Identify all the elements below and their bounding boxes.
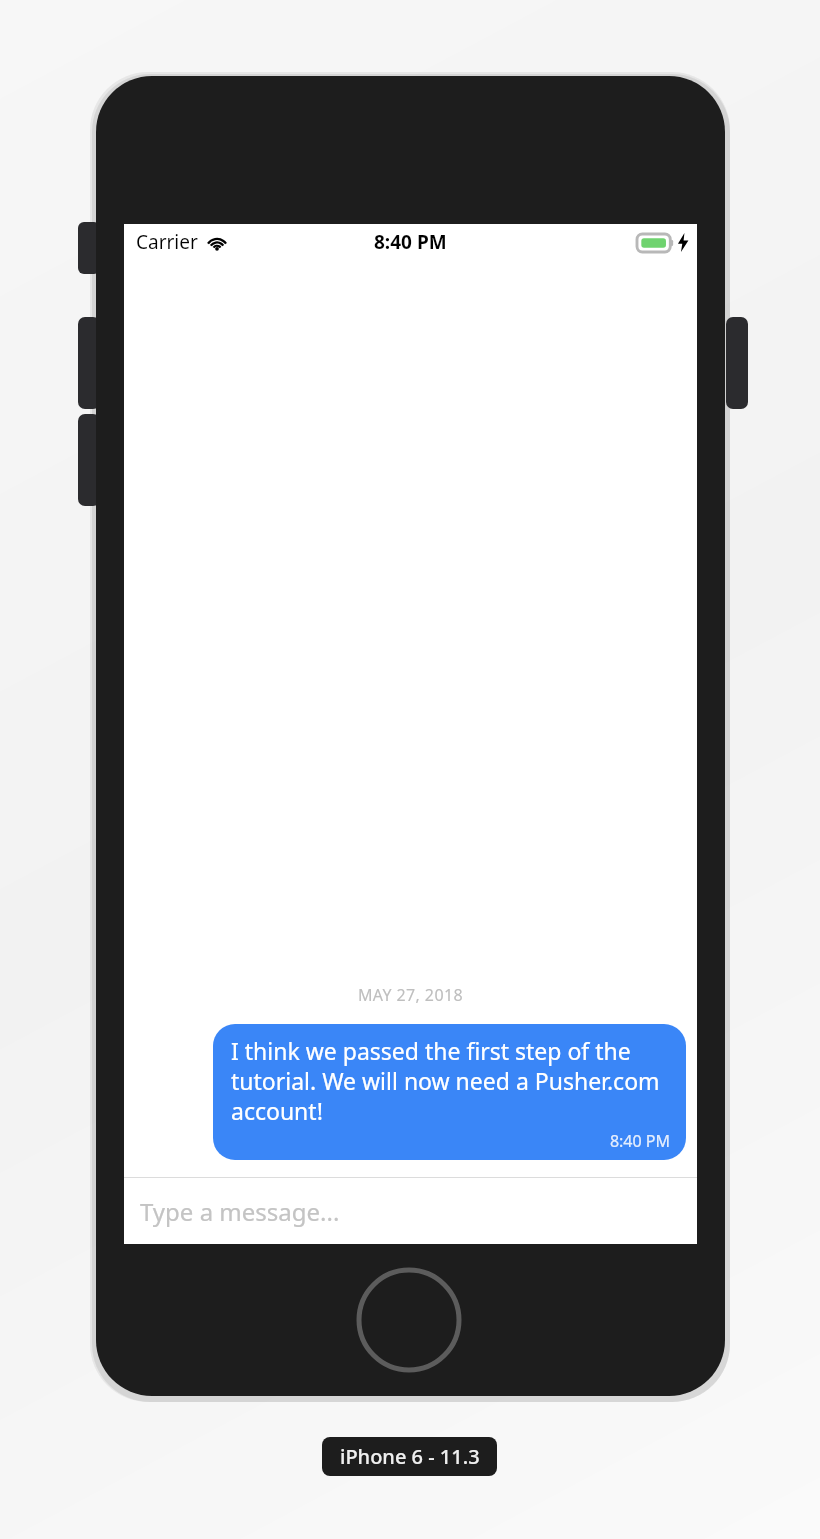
button[interactable]: Type a message... xyxy=(124,1178,697,1244)
staticText: 8:40 PM xyxy=(231,1130,670,1152)
button[interactable]: I think we passed the first step of the … xyxy=(213,1024,686,1160)
staticText: MAY 27, 2018 xyxy=(124,984,697,1006)
staticText: Type a message... xyxy=(140,1195,340,1228)
staticText: iPhone 6 - 11.3 xyxy=(340,1443,480,1470)
staticText: Carrier xyxy=(136,229,198,255)
button[interactable]: iPhone 6 - 11.3 xyxy=(322,1437,497,1476)
staticText: I think we passed the first step of the … xyxy=(231,1035,670,1126)
staticText: 8:40 PM xyxy=(374,229,447,255)
button[interactable]: Home xyxy=(356,1267,462,1373)
